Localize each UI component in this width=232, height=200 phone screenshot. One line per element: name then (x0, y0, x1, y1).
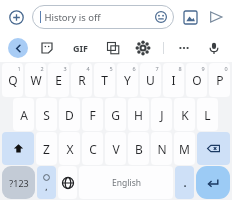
staticText: Z (43, 141, 50, 157)
staticText: P (216, 72, 224, 88)
button[interactable]: F (82, 98, 103, 131)
button[interactable]: W (25, 63, 46, 97)
button[interactable]: I (163, 63, 184, 97)
staticText: G (111, 107, 120, 123)
button[interactable]: ?123 (2, 166, 35, 199)
button[interactable]: N (151, 132, 172, 165)
button[interactable]: Emoji (153, 9, 169, 25)
staticText: O (192, 72, 202, 88)
button[interactable]: J (151, 98, 172, 131)
staticText: 1 (17, 65, 21, 72)
button[interactable]: G (105, 98, 126, 131)
button[interactable]: M (174, 132, 195, 165)
staticText: 5 (109, 65, 113, 72)
button[interactable]: A (13, 98, 34, 131)
staticText: GIF (73, 42, 88, 54)
staticText: 3 (63, 65, 67, 72)
button[interactable]: Shift (2, 132, 34, 165)
button[interactable]: Voice input (204, 38, 224, 58)
staticText: English (112, 177, 141, 189)
button[interactable]: H (128, 98, 149, 131)
button[interactable]: B (128, 132, 149, 165)
staticText: 2 (40, 65, 44, 72)
button[interactable]: T (94, 63, 115, 97)
button[interactable]: P (209, 63, 230, 97)
button[interactable]: Emoji and comma (37, 166, 56, 199)
staticText: X (66, 141, 74, 157)
button[interactable]: History is off (32, 5, 174, 29)
staticText: 7 (155, 65, 159, 72)
button[interactable]: Insert image (180, 7, 200, 27)
staticText: C (89, 141, 97, 157)
button[interactable]: Z (36, 132, 57, 165)
staticText: R (78, 72, 86, 88)
staticText: V (112, 141, 120, 157)
button[interactable]: Enter (196, 166, 230, 199)
staticText: N (157, 141, 167, 157)
button[interactable]: E (48, 63, 69, 97)
button[interactable]: Y (117, 63, 138, 97)
staticText: 4 (86, 65, 90, 72)
button[interactable]: C (82, 132, 103, 165)
button[interactable]: U (140, 63, 161, 97)
button[interactable]: Add attachment (5, 6, 27, 28)
staticText: ?123 (9, 177, 29, 189)
button[interactable]: R (71, 63, 92, 97)
staticText: Y (124, 72, 131, 88)
button[interactable]: English (79, 166, 173, 199)
button[interactable]: X (59, 132, 80, 165)
staticText: W (30, 72, 42, 88)
button[interactable]: Settings (133, 38, 153, 58)
button[interactable]: GIF (67, 35, 93, 61)
staticText: J (160, 107, 164, 123)
staticText: K (181, 107, 189, 123)
button[interactable]: Send (205, 6, 227, 28)
staticText: I (171, 72, 176, 88)
staticText: T (101, 72, 108, 88)
button[interactable]: Change language (58, 166, 77, 199)
staticText: U (146, 72, 155, 88)
staticText: 9 (201, 65, 205, 72)
staticText: History is off (44, 11, 101, 24)
button[interactable]: S (36, 98, 57, 131)
staticText: . (183, 175, 187, 190)
staticText: B (135, 141, 143, 157)
staticText: A (20, 107, 28, 123)
button[interactable]: L (197, 98, 218, 131)
staticText: 0 (224, 65, 228, 72)
staticText: F (89, 107, 96, 123)
staticText: , (45, 181, 48, 192)
button[interactable]: K (174, 98, 195, 131)
button[interactable]: Stickers (37, 38, 57, 58)
staticText: 8 (178, 65, 182, 72)
staticText: 6 (132, 65, 136, 72)
button[interactable]: Back (8, 38, 28, 58)
staticText: Q (8, 72, 18, 88)
staticText: H (134, 107, 143, 123)
button[interactable]: Translate (103, 38, 123, 58)
button[interactable]: More options (174, 38, 194, 58)
staticText: D (65, 107, 74, 123)
button[interactable]: Q (2, 63, 23, 97)
button[interactable]: V (105, 132, 126, 165)
staticText: M (179, 141, 190, 157)
button[interactable]: Backspace (197, 132, 230, 165)
button[interactable]: . (175, 166, 194, 199)
button[interactable]: O (186, 63, 207, 97)
staticText: E (55, 72, 62, 88)
staticText: L (204, 107, 211, 123)
button[interactable]: D (59, 98, 80, 131)
staticText: S (43, 107, 50, 123)
